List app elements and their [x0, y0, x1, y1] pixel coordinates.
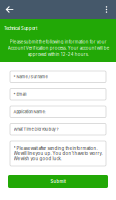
button[interactable]: More options [98, 0, 114, 19]
staticText: * Name / Surname [13, 74, 47, 79]
staticText: Technical Support [4, 26, 37, 31]
staticText: Please submit the following information … [7, 39, 108, 57]
button[interactable]: Back [1, 0, 17, 19]
staticText: * Please wait after sending the informat… [13, 146, 102, 161]
staticText: * Email [13, 92, 26, 97]
staticText: Application Name: [13, 109, 45, 114]
button[interactable]: Submit [8, 175, 108, 188]
staticText: What Time Did You Buy ? [13, 127, 58, 132]
staticText: Submit [50, 179, 65, 184]
